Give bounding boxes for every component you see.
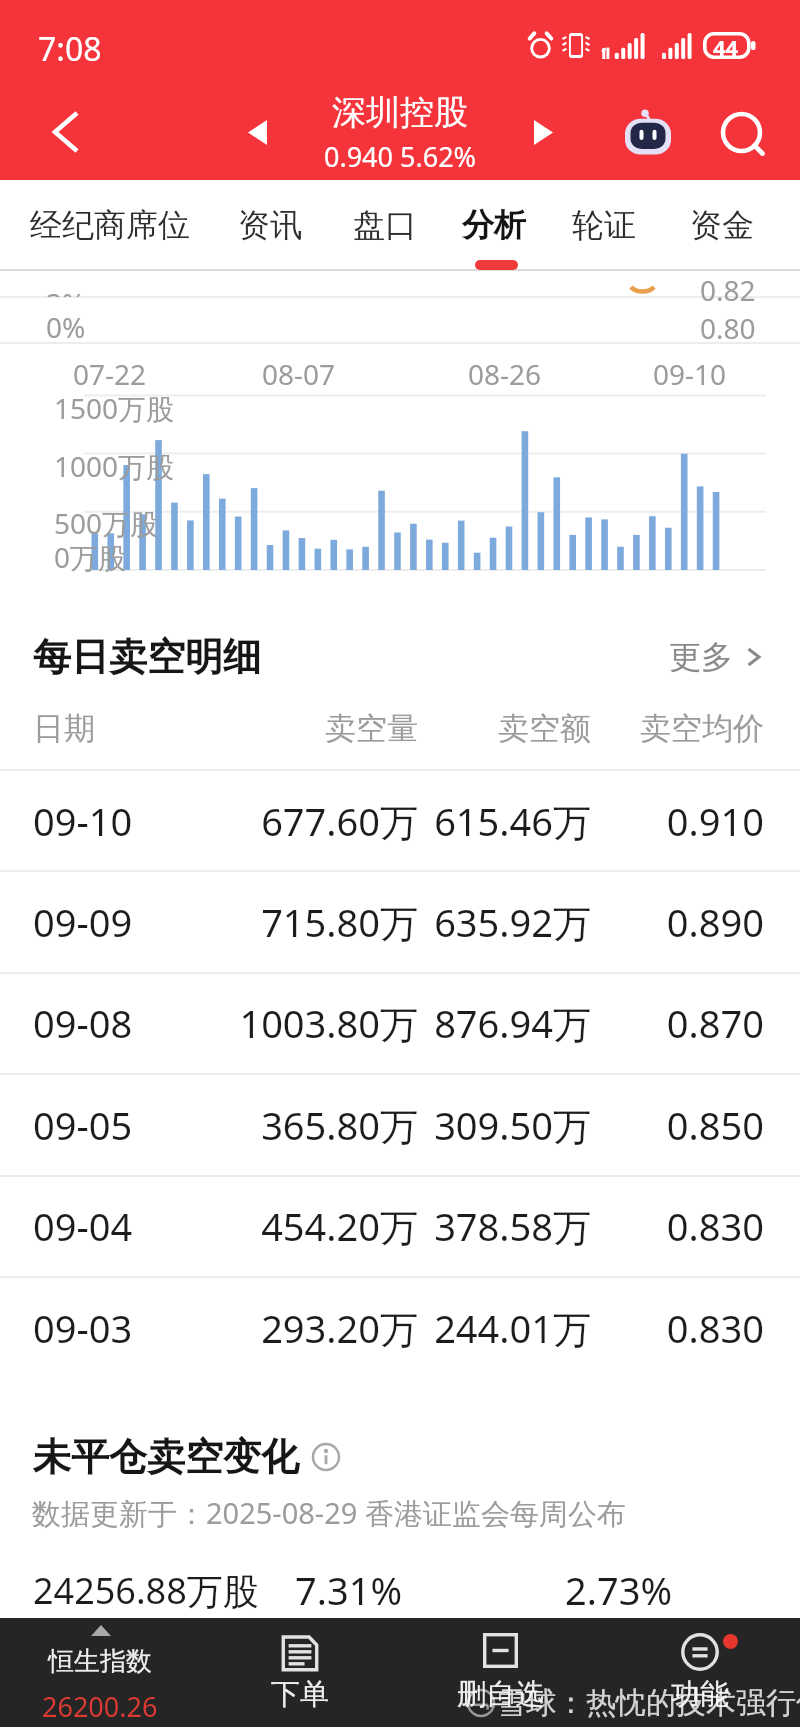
- button[interactable]: Search: [702, 84, 778, 180]
- staticText: 0.82: [700, 271, 756, 309]
- staticText: 0.80: [700, 309, 756, 347]
- button[interactable]: 删自选: [430, 1618, 570, 1727]
- button[interactable]: AI assistant: [612, 84, 684, 180]
- staticText: 删自选: [457, 1676, 544, 1713]
- button[interactable]: 功能: [630, 1618, 770, 1727]
- staticText: 293.20万: [210, 1302, 418, 1354]
- staticText: 09-04: [33, 1200, 210, 1252]
- staticText: 分析: [462, 205, 526, 245]
- staticText: 500万股: [54, 504, 159, 542]
- button[interactable]: Info: [311, 1442, 341, 1472]
- staticText: 卖空量: [210, 709, 418, 748]
- staticText: 0.910: [591, 795, 764, 847]
- staticText: 数据更新于：2025-08-29 香港证监会每周公布: [32, 1493, 626, 1533]
- staticText: 盘口: [353, 205, 417, 245]
- staticText: 0.940 5.62%: [324, 138, 477, 175]
- button[interactable]: 经纪商席位: [20, 180, 200, 268]
- button[interactable]: 更多: [665, 631, 767, 683]
- staticText: 309.50万: [418, 1099, 591, 1151]
- staticText: 3%: [46, 284, 86, 297]
- staticText: 0.890: [591, 896, 764, 948]
- button[interactable]: 分析: [404, 180, 584, 268]
- button[interactable]: Previous stock: [222, 84, 292, 180]
- staticText: 未平仓卖空变化: [33, 1433, 299, 1481]
- button[interactable]: 资讯: [180, 180, 360, 268]
- staticText: 1000万股: [54, 447, 175, 485]
- button[interactable]: 09-04: [0, 1176, 800, 1276]
- staticText: 1500万股: [54, 389, 175, 427]
- button[interactable]: 恒生指数: [0, 1618, 200, 1727]
- staticText: 下单: [271, 1676, 329, 1713]
- button[interactable]: 09-05: [0, 1075, 800, 1175]
- staticText: 365.80万: [210, 1099, 418, 1151]
- staticText: 0万股: [54, 538, 127, 576]
- staticText: 677.60万: [210, 795, 418, 847]
- staticText: 卖空均价: [591, 709, 764, 748]
- button[interactable]: 轮证: [514, 180, 694, 268]
- button[interactable]: 09-09: [0, 872, 800, 972]
- button[interactable]: 09-08: [0, 973, 800, 1073]
- staticText: 0.870: [591, 997, 764, 1049]
- staticText: 7:08: [38, 27, 102, 71]
- staticText: 24256.88万股: [33, 1566, 295, 1615]
- staticText: 资讯: [238, 205, 302, 245]
- staticText: 615.46万: [418, 795, 591, 847]
- staticText: 深圳控股: [332, 91, 468, 134]
- staticText: 功能: [671, 1676, 729, 1713]
- button[interactable]: 盘口: [295, 180, 475, 268]
- staticText: 2.73%: [565, 1564, 672, 1616]
- staticText: 09-09: [33, 896, 210, 948]
- staticText: 日期: [33, 709, 210, 748]
- button[interactable]: Next stock: [508, 84, 578, 180]
- staticText: 0.850: [591, 1099, 764, 1151]
- staticText: 资金: [690, 205, 754, 245]
- staticText: 09-03: [33, 1302, 210, 1354]
- staticText: 7.31%: [295, 1564, 565, 1616]
- staticText: 0.830: [591, 1200, 764, 1252]
- staticText: 378.58万: [418, 1200, 591, 1252]
- staticText: 09-10: [33, 795, 210, 847]
- staticText: 876.94万: [418, 997, 591, 1049]
- staticText: 07-22: [73, 355, 147, 393]
- staticText: 09-08: [33, 997, 210, 1049]
- staticText: 26200.26: [42, 1688, 158, 1725]
- staticText: 0%: [46, 308, 86, 346]
- staticText: 0.830: [591, 1302, 764, 1354]
- staticText: 08-07: [262, 355, 336, 393]
- staticText: 244.01万: [418, 1302, 591, 1354]
- button[interactable]: 资金: [632, 180, 800, 268]
- staticText: 卖空额: [418, 709, 591, 748]
- button[interactable]: 下单: [230, 1618, 370, 1727]
- staticText: 更多: [669, 637, 733, 677]
- staticText: 635.92万: [418, 896, 591, 948]
- staticText: 恒生指数: [48, 1645, 152, 1678]
- staticText: 每日卖空明细: [33, 633, 261, 681]
- button[interactable]: Back: [16, 84, 116, 180]
- staticText: 08-26: [468, 355, 542, 393]
- staticText: 09-05: [33, 1099, 210, 1151]
- staticText: 44: [713, 32, 739, 59]
- button[interactable]: 09-10: [0, 771, 800, 871]
- staticText: 09-10: [653, 355, 727, 393]
- button[interactable]: 09-03: [0, 1278, 800, 1378]
- staticText: 454.20万: [210, 1200, 418, 1252]
- staticText: 1003.80万: [210, 997, 418, 1049]
- staticText: 715.80万: [210, 896, 418, 948]
- staticText: 经纪商席位: [30, 205, 190, 245]
- staticText: 轮证: [572, 205, 636, 245]
- staticText: 雪球：热忱的技术强行侠: [496, 1684, 800, 1722]
